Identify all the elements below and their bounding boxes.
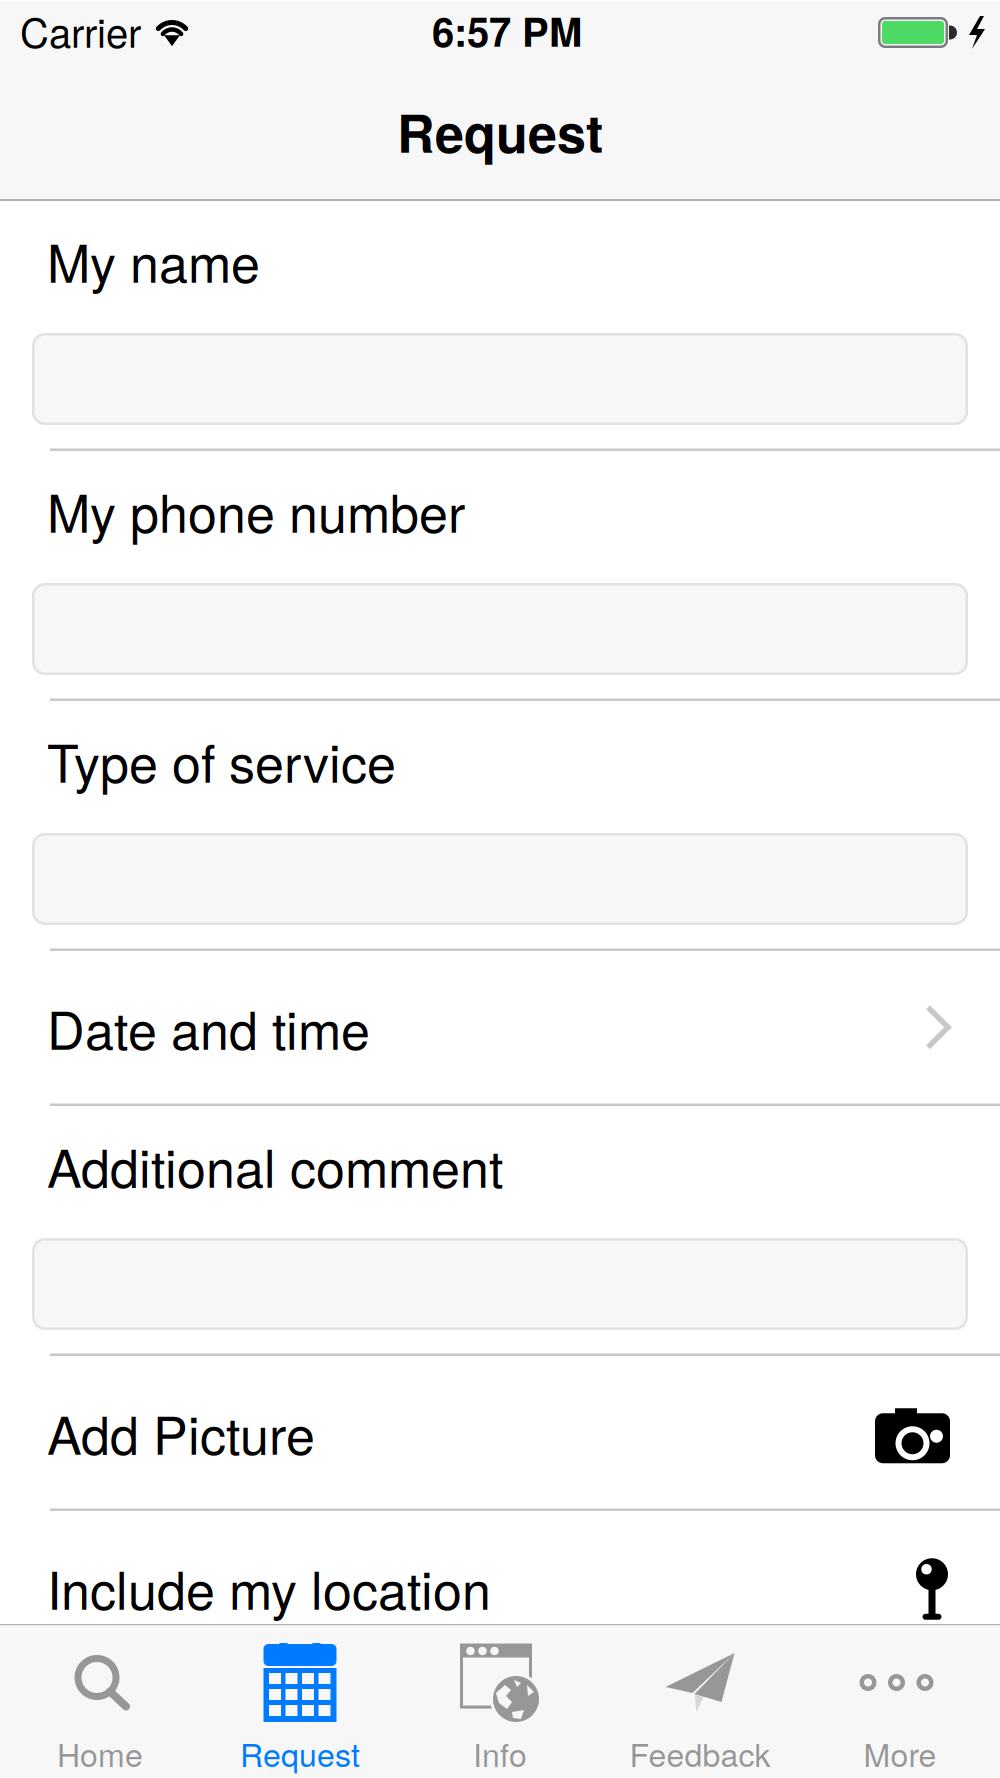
staticText: Request: [240, 1730, 360, 1776]
staticText: 6:57 PM: [432, 2, 582, 59]
button[interactable]: Date and time: [0, 951, 1000, 1103]
staticText: Feedback: [629, 1730, 770, 1776]
staticText: Type of service: [47, 723, 396, 797]
button[interactable]: My name: [0, 333, 1000, 448]
button[interactable]: Feedback: [600, 1625, 800, 1777]
staticText: Include my location: [47, 1550, 491, 1624]
button[interactable]: More: [800, 1625, 1000, 1777]
staticText: My phone number: [47, 473, 465, 547]
button[interactable]: My phone number: [0, 583, 1000, 698]
staticText: My name: [47, 223, 260, 297]
staticText: Request: [397, 94, 603, 169]
button[interactable]: Add Picture: [0, 1356, 1000, 1508]
button[interactable]: Type of service: [0, 833, 1000, 948]
staticText: Additional comment: [47, 1128, 503, 1202]
button[interactable]: Additional comment: [0, 1238, 1000, 1353]
button[interactable]: Request: [200, 1625, 400, 1777]
staticText: Date and time: [47, 990, 370, 1064]
staticText: Add Picture: [47, 1395, 315, 1469]
staticText: Home: [57, 1730, 143, 1776]
button[interactable]: Info: [400, 1625, 600, 1777]
staticText: Info: [473, 1730, 527, 1776]
staticText: Carrier: [20, 2, 141, 59]
button[interactable]: Include my location: [0, 1511, 1000, 1663]
button[interactable]: Home: [0, 1625, 200, 1777]
staticText: More: [863, 1730, 936, 1776]
